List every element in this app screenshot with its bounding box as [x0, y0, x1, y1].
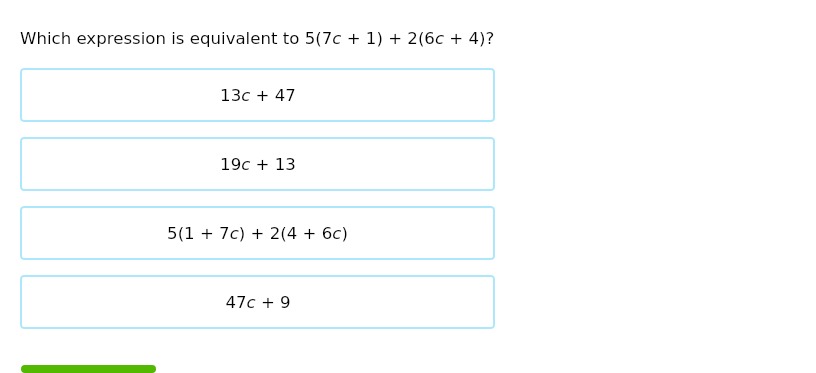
staticText: Which expression is equivalent to 5(7c +…: [20, 29, 495, 48]
button[interactable]: 13c + 47: [20, 68, 495, 122]
button[interactable]: Check answer: [21, 365, 156, 373]
staticText: 13c + 47: [220, 86, 296, 105]
staticText: 19c + 13: [220, 155, 296, 174]
button[interactable]: 47c + 9: [20, 275, 495, 329]
staticText: 47c + 9: [225, 293, 291, 312]
button[interactable]: 5(1 + 7c) + 2(4 + 6c): [20, 206, 495, 260]
button[interactable]: 19c + 13: [20, 137, 495, 191]
staticText: 5(1 + 7c) + 2(4 + 6c): [167, 224, 348, 243]
